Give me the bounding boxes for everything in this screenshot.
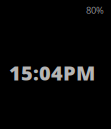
staticText: 15:04PM <box>9 59 95 86</box>
staticText: 80% <box>86 4 104 16</box>
